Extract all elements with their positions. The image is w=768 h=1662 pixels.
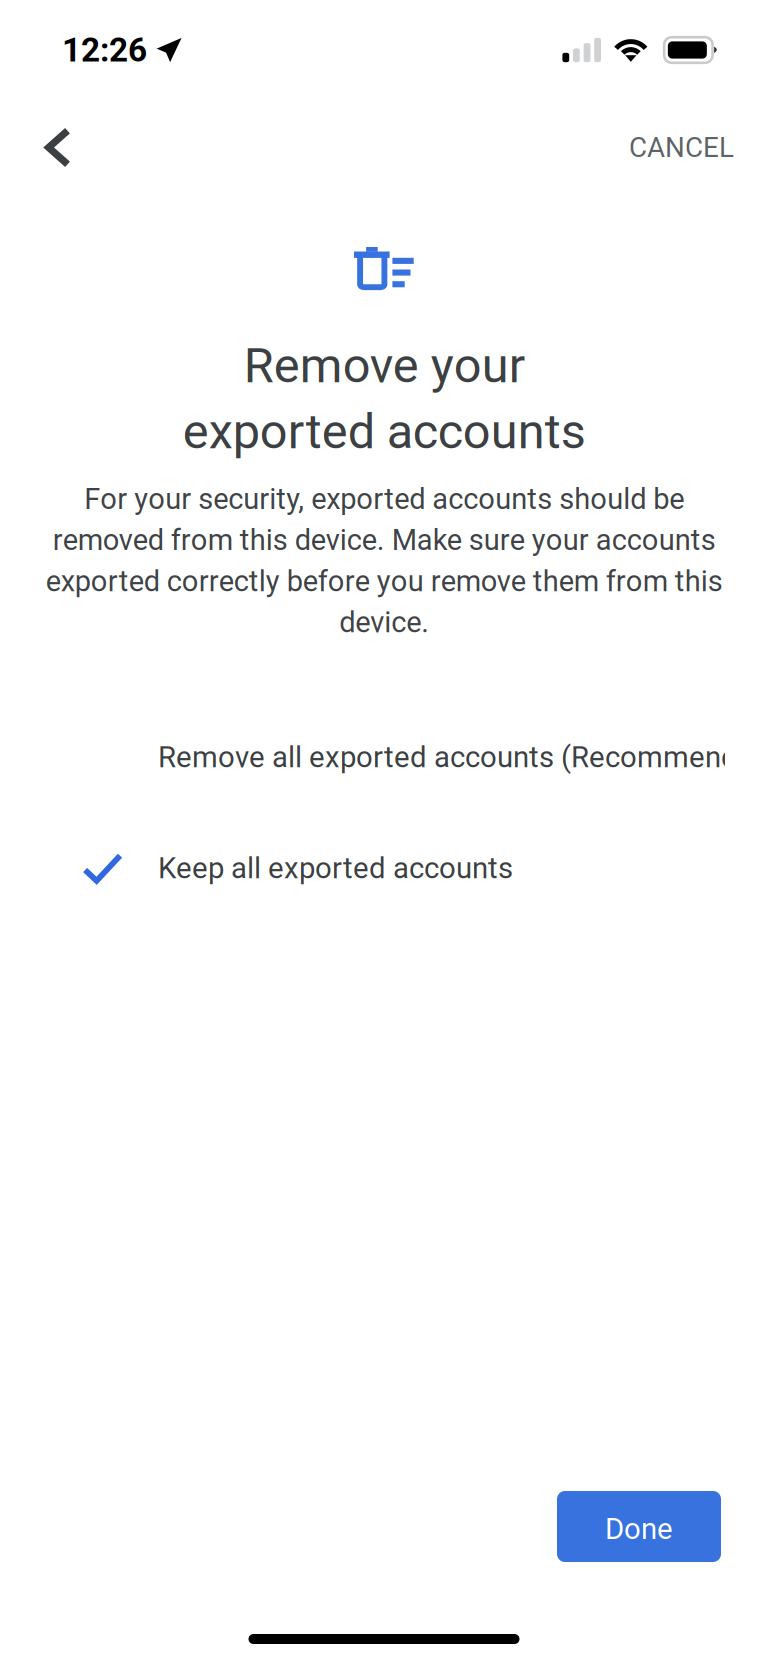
button[interactable]: Back [0,100,140,180]
button[interactable]: Keep all exported accounts [0,842,768,894]
staticText: Done [605,1512,673,1546]
staticText: Remove all exported accounts (Recommende… [158,740,768,774]
staticText: 12:26 [62,30,147,70]
staticText: Remove your exported accounts [182,337,585,460]
staticText: For your security, exported accounts sho… [45,482,722,639]
button[interactable]: Done [557,1491,721,1562]
button[interactable]: Remove all exported accounts (Recommende… [0,729,768,785]
button[interactable]: CANCEL [538,100,768,180]
staticText: Keep all exported accounts [158,851,513,885]
staticText: CANCEL [629,131,734,164]
